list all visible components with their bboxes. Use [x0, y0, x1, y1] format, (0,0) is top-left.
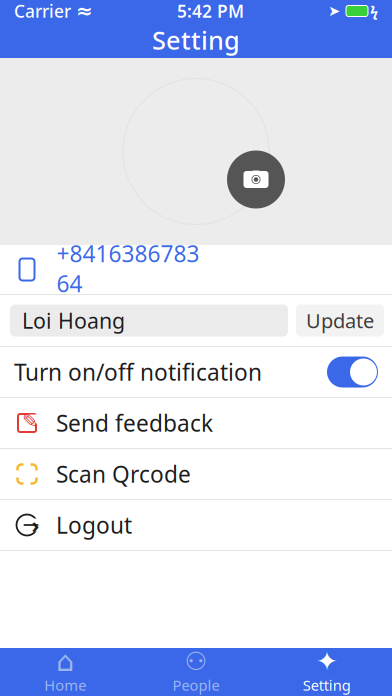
button[interactable]: ⌂ [0, 648, 131, 696]
button[interactable]: › [0, 500, 392, 550]
staticText: ➤ [328, 3, 340, 19]
staticText: +841638678364 [56, 238, 199, 299]
staticText: Update [306, 307, 374, 334]
button[interactable]: Update [296, 304, 384, 336]
button[interactable]: Scan Qrcode [0, 449, 392, 499]
staticText: ϟ [370, 1, 378, 21]
staticText: Scan Qrcode [56, 459, 191, 489]
button[interactable]: ✎ [0, 398, 392, 448]
staticText: Setting [152, 23, 240, 57]
staticText: ≈ [76, 0, 93, 22]
staticText: Turn on/off notification [14, 357, 262, 387]
button[interactable]: ✦ [261, 648, 392, 696]
staticText: ⌂ [56, 645, 74, 677]
staticText: Home [44, 675, 86, 695]
staticText: 5:42 PM [177, 0, 244, 22]
staticText: Setting [303, 675, 351, 695]
staticText: Loi Hoang [22, 306, 125, 335]
button[interactable]: Change photo [227, 150, 285, 208]
staticText: Send feedback [56, 408, 213, 438]
staticText: Logout [56, 510, 132, 540]
staticText: ⚇ [184, 647, 207, 676]
button[interactable]: +841638678364 [0, 245, 392, 294]
staticText: ✦ [316, 646, 338, 676]
button[interactable]: ⚇ [131, 648, 261, 696]
staticText: › [31, 511, 39, 539]
staticText: People [172, 675, 219, 695]
staticText: ✎ [22, 410, 39, 432]
button[interactable]: Turn on/off notification [0, 347, 392, 397]
staticText: Carrier [14, 0, 71, 22]
